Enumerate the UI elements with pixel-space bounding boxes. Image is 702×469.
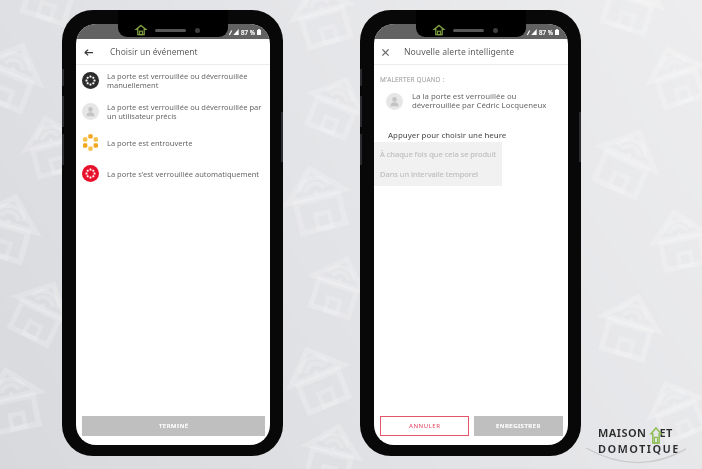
staticText: La porte est verrouillée ou déverrouillé… [107, 102, 262, 121]
staticText: MAISON ET [598, 425, 673, 440]
staticText: M'ALERTER QUAND : [380, 75, 445, 84]
button[interactable]: ENREGISTRER [474, 416, 563, 436]
button[interactable]: La porte est entrouverte [76, 127, 270, 158]
button[interactable]: Back [80, 44, 96, 60]
button[interactable]: ANNULER [380, 416, 469, 436]
button[interactable]: La porte est verrouillée ou déverrouillé… [76, 96, 270, 127]
button[interactable]: Close [377, 44, 393, 60]
button[interactable]: TERMINÉ [82, 416, 265, 436]
staticText: ENREGISTRER [496, 422, 541, 430]
button[interactable]: La porte s'est verrouillée automatiqueme… [76, 158, 270, 189]
button[interactable]: À chaque fois que cela se produit [374, 147, 568, 161]
staticText: La porte est entrouverte [107, 138, 193, 148]
staticText: 87 % [241, 28, 255, 36]
staticText: DOMOTIQUE [598, 441, 680, 456]
staticText: Dans un intervalle temporel [380, 169, 478, 179]
staticText: La porte est verrouillée ou déverrouillé… [107, 71, 248, 90]
button[interactable]: La la porte est verrouillée ou déverroui… [374, 89, 568, 113]
staticText: 87 % [539, 28, 553, 36]
button[interactable]: La porte est verrouillée ou déverrouillé… [76, 65, 270, 96]
staticText: ANNULER [409, 422, 441, 430]
staticText: Choisir un événement [110, 46, 198, 58]
staticText: Appuyer pour choisir une heure [388, 130, 507, 141]
staticText: TERMINÉ [159, 422, 189, 430]
staticText: À chaque fois que cela se produit [380, 149, 497, 159]
staticText: Nouvelle alerte intelligente [404, 46, 515, 58]
staticText: La porte s'est verrouillée automatiqueme… [107, 169, 260, 179]
staticText: La la porte est verrouillée ou déverroui… [412, 91, 547, 111]
button[interactable]: Appuyer pour choisir une heure [374, 129, 568, 142]
button[interactable]: Dans un intervalle temporel [374, 167, 568, 181]
